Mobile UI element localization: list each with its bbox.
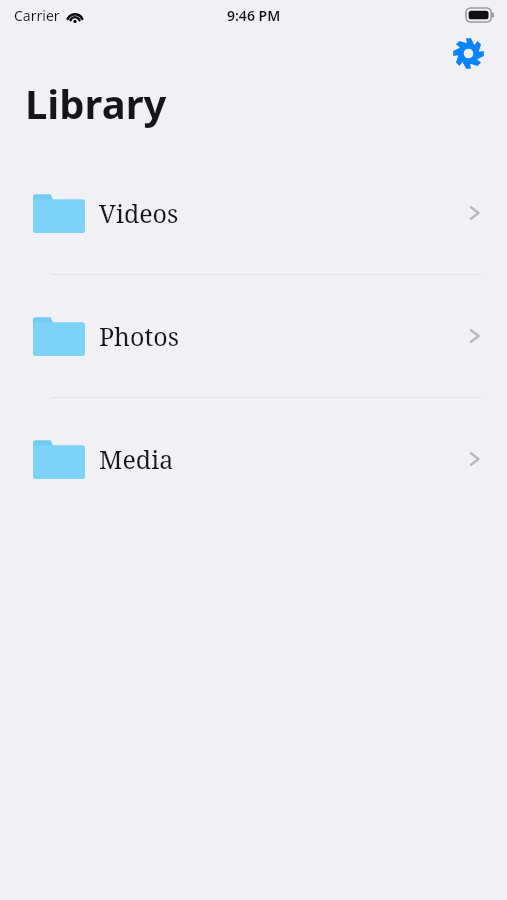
staticText: 9:46 PM <box>227 6 281 25</box>
staticText: Photos <box>99 319 465 353</box>
button[interactable]: Photos <box>0 275 507 397</box>
staticText: Library <box>25 76 167 128</box>
staticText: Media <box>99 442 465 476</box>
button[interactable]: Settings <box>451 36 485 70</box>
button[interactable]: Videos <box>0 152 507 274</box>
staticText: Carrier <box>14 6 60 25</box>
button[interactable]: Media <box>0 398 507 520</box>
staticText: Videos <box>99 196 465 230</box>
